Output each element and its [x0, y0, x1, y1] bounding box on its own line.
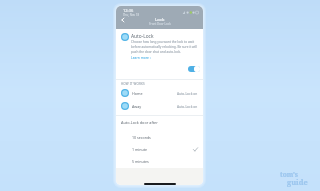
staticText: Home: [132, 91, 143, 96]
button[interactable]: 10 seconds: [116, 131, 203, 144]
button[interactable]: Away: [116, 100, 203, 112]
staticText: Choose how long you want the lock to wai…: [131, 40, 201, 54]
staticText: 10 seconds: [132, 135, 151, 140]
staticText: guide: [287, 177, 308, 187]
button[interactable]: 1 minute: [116, 143, 203, 156]
staticText: 12:36: [123, 8, 134, 13]
staticText: Thu, Nov 18: [123, 13, 140, 17]
staticText: Auto-Lock on: [177, 104, 198, 108]
button[interactable]: 5 minutes: [116, 155, 203, 168]
button[interactable]: Auto-Lock toggle: [188, 66, 200, 72]
button[interactable]: Learn more ›: [131, 55, 151, 59]
staticText: 5 minutes: [132, 159, 149, 164]
staticText: Lock: [155, 16, 165, 22]
staticText: Auto-Lock on: [177, 91, 198, 95]
staticText: Away: [132, 104, 142, 109]
staticText: Auto-Lock: [131, 33, 154, 40]
staticText: 1 minute: [132, 147, 148, 152]
staticText: Front Door Lock: [149, 22, 171, 26]
staticText: HOW IT WORKS: [121, 82, 145, 86]
button[interactable]: Back: [119, 16, 127, 24]
button[interactable]: Home: [116, 87, 203, 99]
staticText: Auto-Lock door after: [121, 120, 158, 125]
staticText: tom's: [280, 170, 299, 179]
